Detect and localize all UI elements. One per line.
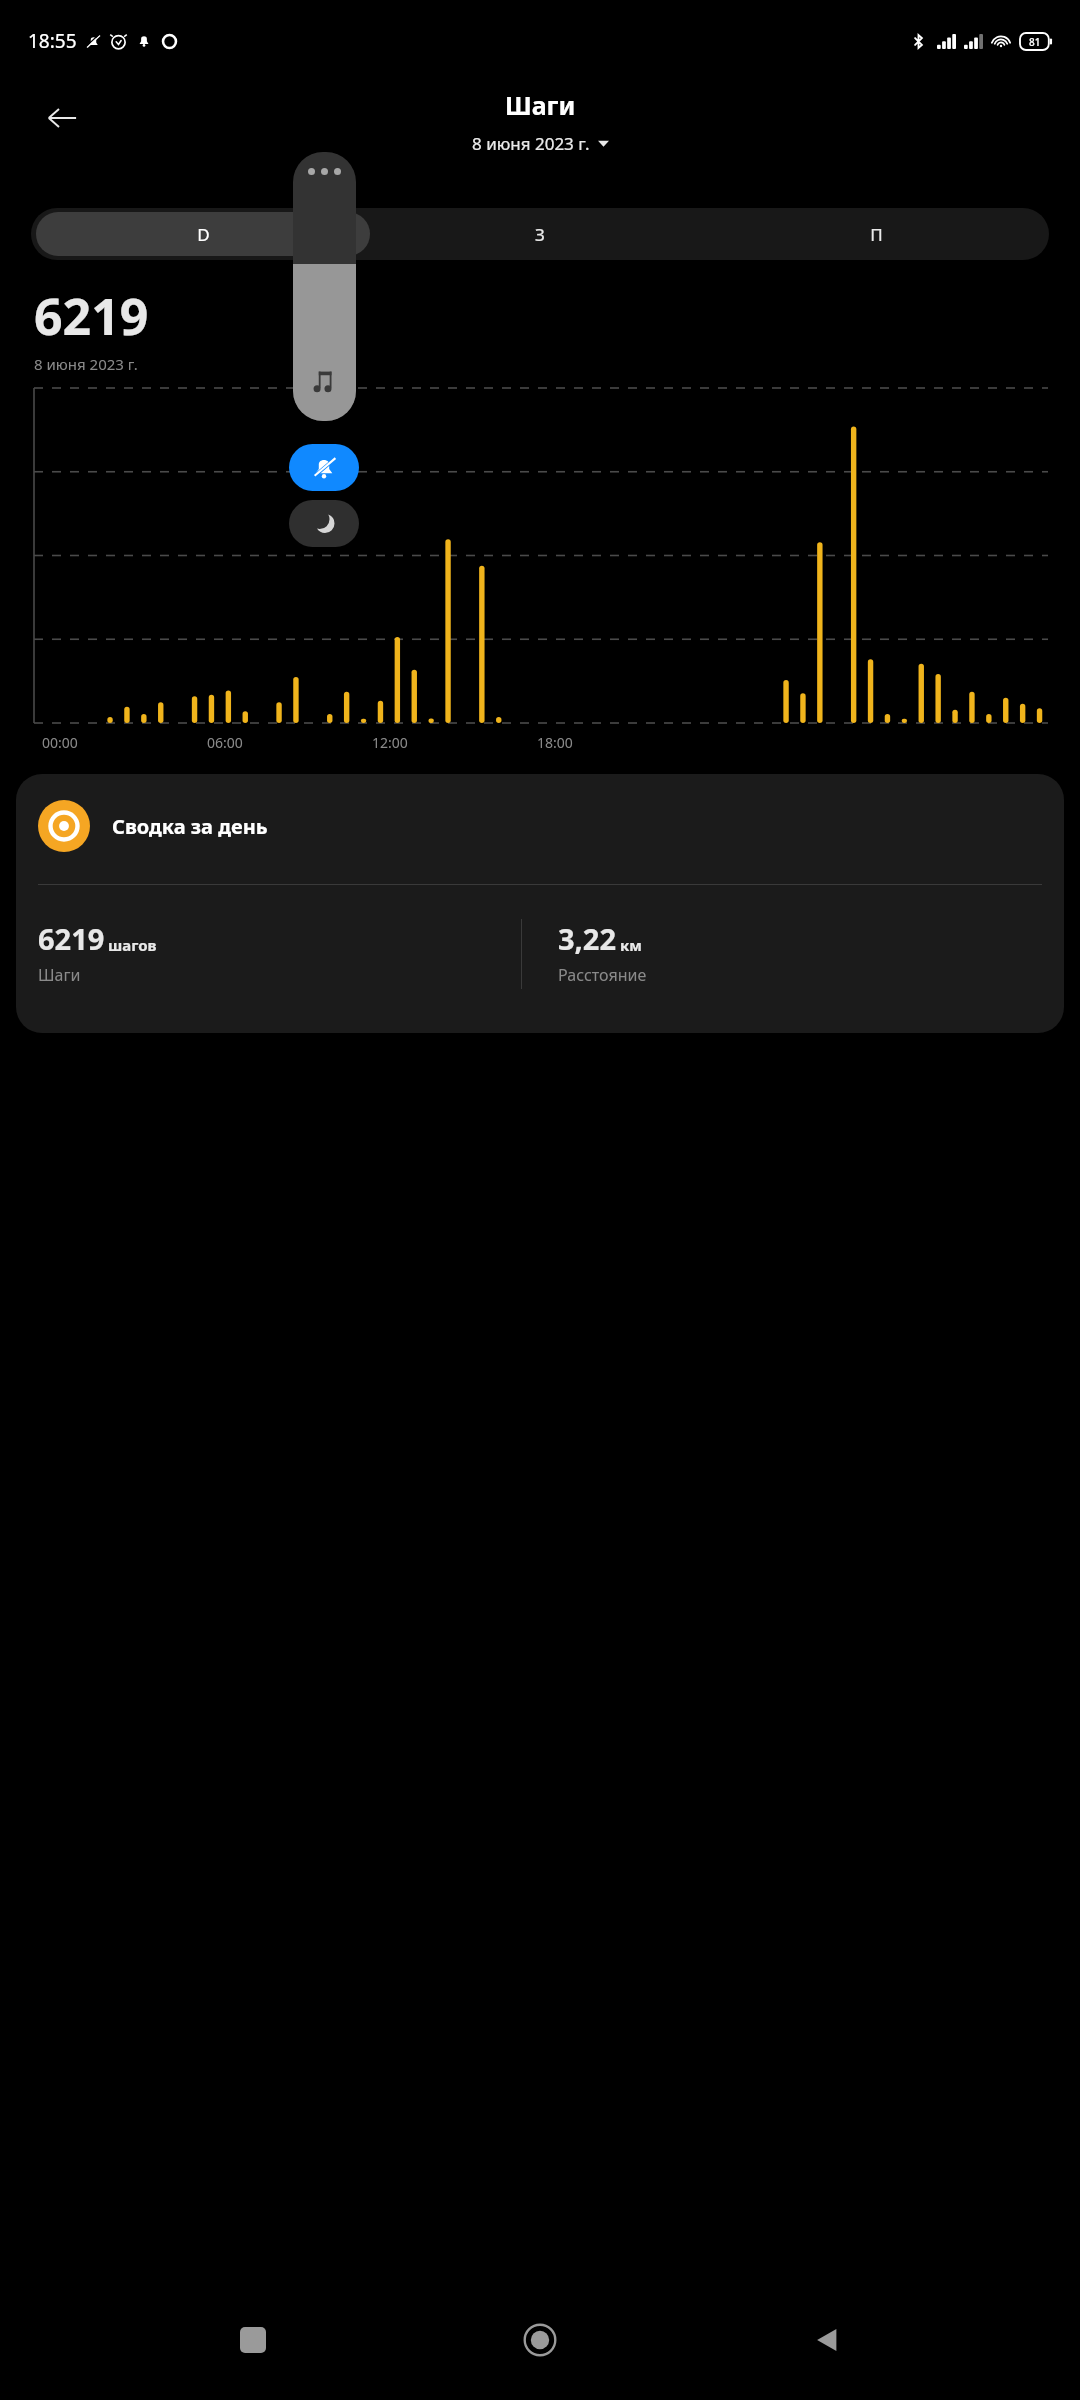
- button[interactable]: D: [36, 212, 370, 256]
- button[interactable]: П: [709, 212, 1044, 256]
- button[interactable]: Home: [506, 2306, 574, 2374]
- staticText: 6219: [38, 919, 105, 958]
- button[interactable]: Сводка за день: [16, 774, 1064, 1033]
- staticText: 18:55: [28, 28, 77, 54]
- staticText: 06:00: [207, 733, 243, 752]
- staticText: км: [620, 935, 642, 955]
- button[interactable]: Back: [34, 90, 90, 146]
- button[interactable]: Mute notifications: [289, 444, 359, 491]
- staticText: 8 июня 2023 г.: [34, 354, 138, 374]
- staticText: 12:00: [372, 733, 408, 752]
- staticText: Шаги: [38, 964, 81, 986]
- staticText: З: [535, 223, 545, 246]
- staticText: 3,22: [558, 919, 617, 958]
- staticText: П: [870, 223, 883, 246]
- staticText: 18:00: [537, 733, 573, 752]
- button[interactable]: Do not disturb: [289, 500, 359, 547]
- staticText: 6219: [34, 282, 149, 350]
- button[interactable]: Volume slider: [293, 152, 356, 421]
- button[interactable]: Back: [793, 2306, 861, 2374]
- staticText: 8 июня 2023 г.: [472, 132, 590, 155]
- button[interactable]: З: [372, 212, 707, 256]
- staticText: Расстояние: [558, 964, 647, 986]
- staticText: 00:00: [42, 733, 78, 752]
- staticText: D: [197, 223, 210, 246]
- staticText: Шаги: [505, 88, 576, 122]
- staticText: 81: [1029, 35, 1041, 49]
- button[interactable]: Recents: [219, 2306, 287, 2374]
- staticText: шагов: [108, 935, 157, 955]
- staticText: Сводка за день: [112, 813, 268, 840]
- button[interactable]: 8 июня 2023 г.: [468, 130, 613, 157]
